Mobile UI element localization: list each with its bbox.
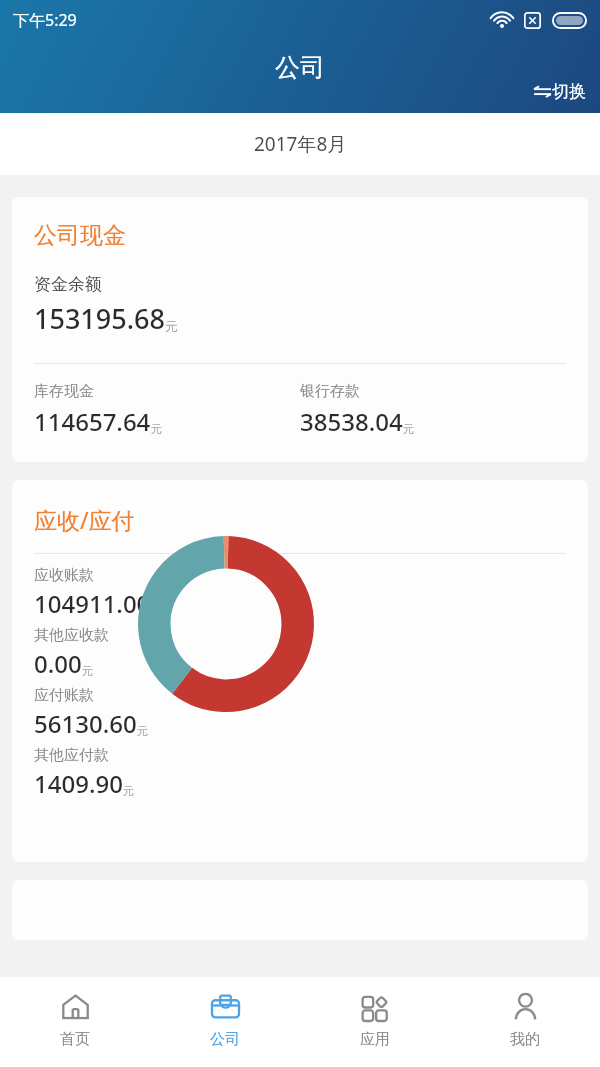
staticText: 0.00: [34, 647, 82, 680]
staticText: 库存现金: [34, 382, 94, 401]
staticText: 元: [123, 784, 135, 798]
staticText: 应收账款: [34, 566, 94, 585]
staticText: 104911.00: [34, 587, 151, 620]
staticText: 银行存款: [300, 382, 360, 401]
staticText: 元: [82, 664, 94, 678]
staticText: 元: [403, 422, 415, 436]
staticText: 元: [151, 422, 163, 436]
staticText: 38538.04: [300, 405, 403, 438]
staticText: 153195.68: [34, 300, 165, 337]
staticText: 元: [137, 724, 149, 738]
button[interactable]: 公司: [150, 977, 300, 1067]
staticText: 2017年8月: [254, 131, 347, 157]
staticText: 切换: [552, 81, 586, 102]
staticText: 首页: [60, 1030, 90, 1049]
staticText: 应用: [360, 1030, 390, 1049]
button[interactable]: 应用: [300, 977, 450, 1067]
staticText: 下午5:29: [13, 9, 77, 31]
staticText: 公司: [210, 1030, 240, 1049]
staticText: 元: [165, 319, 178, 335]
button[interactable]: 应收/应付: [12, 480, 588, 862]
button[interactable]: 首页: [0, 977, 150, 1067]
staticText: 公司: [275, 52, 325, 83]
staticText: 应收/应付: [34, 504, 135, 535]
button[interactable]: 我的: [450, 977, 600, 1067]
staticText: 114657.64: [34, 405, 151, 438]
staticText: 其他应付款: [34, 746, 109, 765]
staticText: 1409.90: [34, 767, 123, 800]
staticText: 应付账款: [34, 686, 94, 705]
staticText: 资金余额: [34, 274, 102, 295]
staticText: 公司现金: [34, 221, 126, 250]
staticText: 其他应收款: [34, 626, 109, 645]
button[interactable]: 公司现金: [12, 197, 588, 462]
staticText: 我的: [510, 1030, 540, 1049]
staticText: 56130.60: [34, 707, 137, 740]
button[interactable]: 切换: [518, 73, 600, 113]
